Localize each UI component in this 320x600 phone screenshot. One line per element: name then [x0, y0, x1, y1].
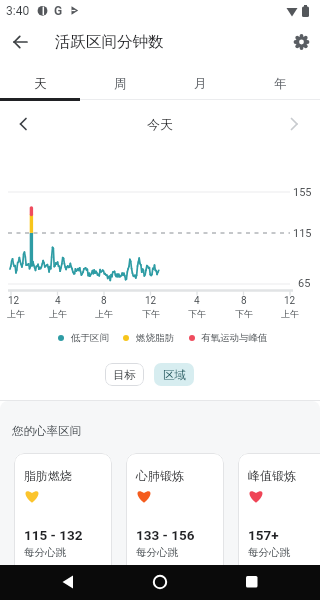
button[interactable] [213, 565, 320, 600]
button[interactable] [107, 565, 213, 600]
staticText: 低于区间 [71, 332, 109, 344]
staticText: 8 [101, 295, 107, 307]
button[interactable]: 天 [0, 67, 80, 101]
staticText: 下午 [142, 308, 160, 319]
staticText: 下午 [235, 308, 253, 319]
staticText: 天 [34, 76, 47, 92]
staticText: 157+ [248, 527, 279, 543]
staticText: 燃烧脂肪 [136, 332, 174, 344]
staticText: 上午 [7, 308, 25, 319]
button[interactable] [8, 108, 40, 140]
staticText: 115 [293, 227, 312, 240]
staticText: 脂肪燃烧 [24, 468, 72, 483]
staticText: 8 [241, 295, 247, 307]
staticText: 心肺锻炼 [136, 468, 184, 483]
staticText: 上午 [49, 308, 67, 319]
button[interactable]: 周 [80, 67, 160, 101]
staticText: 12 [284, 295, 296, 307]
staticText: 12 [145, 295, 157, 307]
staticText: 有氧运动与峰值 [201, 332, 268, 344]
button[interactable]: 年 [240, 67, 320, 101]
staticText: 4 [194, 295, 200, 307]
staticText: 下午 [188, 308, 206, 319]
button[interactable] [4, 26, 36, 58]
staticText: 每分心跳 [136, 546, 178, 559]
staticText: 今天 [147, 116, 173, 132]
button[interactable] [238, 453, 320, 593]
staticText: 区域 [163, 368, 186, 382]
button[interactable] [285, 26, 317, 58]
staticText: 每分心跳 [24, 546, 66, 559]
staticText: 您的心率区间 [12, 424, 81, 438]
staticText: 上午 [95, 308, 113, 319]
staticText: 每分心跳 [248, 546, 290, 559]
button[interactable]: 区域 [154, 363, 194, 386]
staticText: 12 [8, 295, 20, 307]
button[interactable] [14, 453, 112, 593]
staticText: 月 [194, 76, 207, 92]
staticText: 目标 [113, 368, 136, 382]
staticText: 峰值锻炼 [248, 468, 296, 483]
staticText: 周 [114, 76, 127, 92]
staticText: 133 - 156 [136, 527, 195, 543]
staticText: 活跃区间分钟数 [55, 32, 164, 52]
staticText: 155 [293, 186, 312, 199]
button[interactable] [126, 453, 224, 593]
staticText: 上午 [281, 308, 299, 319]
button[interactable]: 月 [160, 67, 240, 101]
staticText: G [54, 4, 63, 18]
staticText: 3:40 [6, 4, 30, 18]
button[interactable]: 目标 [105, 363, 144, 386]
staticText: 4 [55, 295, 61, 307]
staticText: 65 [298, 277, 311, 290]
button[interactable] [0, 565, 107, 600]
button[interactable] [280, 108, 312, 140]
staticText: 115 - 132 [24, 527, 83, 543]
staticText: 年 [274, 76, 287, 92]
